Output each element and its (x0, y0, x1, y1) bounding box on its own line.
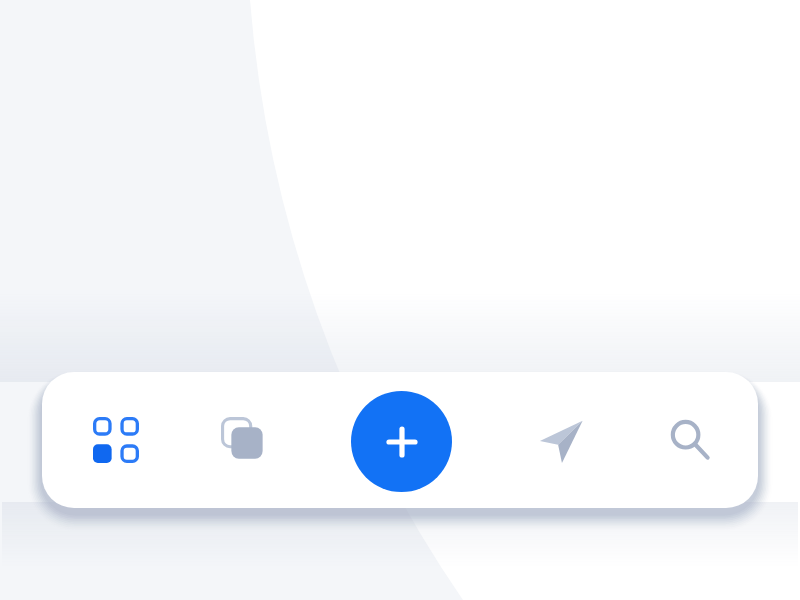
button[interactable]: Search (650, 400, 730, 480)
button[interactable]: Dashboard (76, 400, 156, 480)
button[interactable]: Copy (204, 400, 284, 480)
button[interactable]: Add (351, 391, 452, 492)
button[interactable]: Send (521, 400, 601, 480)
